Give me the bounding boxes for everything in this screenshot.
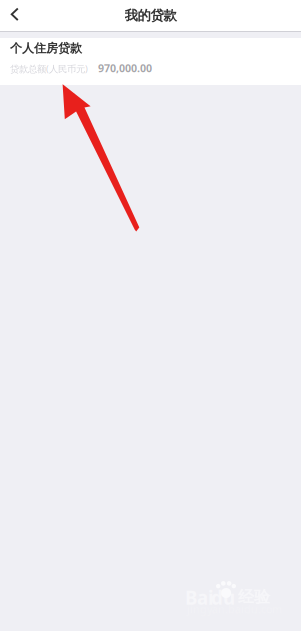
staticText: 贷款总额(人民币元) xyxy=(10,62,88,75)
staticText: 个人住房贷款 xyxy=(10,41,82,56)
button[interactable]: Back xyxy=(0,0,30,31)
staticText: du xyxy=(211,585,235,610)
staticText: 我的贷款 xyxy=(124,7,176,24)
button[interactable]: 个人住房贷款 xyxy=(0,38,301,85)
staticText: 970,000.00 xyxy=(98,61,152,75)
